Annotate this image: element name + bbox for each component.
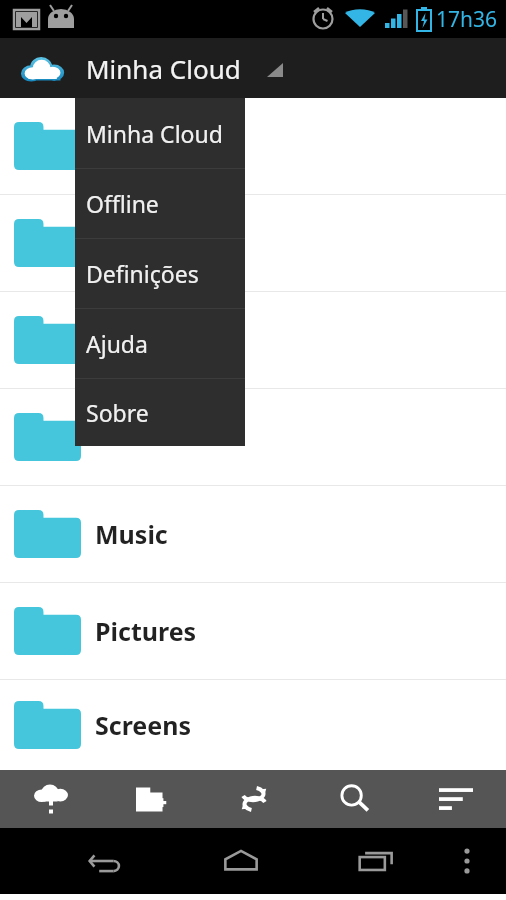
button[interactable]: Sort (405, 770, 506, 828)
staticText: Definições (86, 258, 199, 289)
button[interactable]: New folder (102, 770, 203, 828)
button[interactable]: Definições (75, 239, 245, 308)
button[interactable]: Music (0, 486, 506, 582)
button[interactable]: More options (447, 828, 487, 894)
staticText: Pictures (95, 614, 197, 648)
staticText: Screens (95, 708, 192, 742)
staticText: Sobre (86, 397, 149, 428)
button[interactable] (0, 292, 506, 388)
button[interactable]: Recents (346, 828, 406, 894)
staticText: 17h36 (436, 5, 498, 34)
button[interactable]: Pictures (0, 583, 506, 679)
button[interactable]: Ajuda (75, 309, 245, 378)
button[interactable]: Back (76, 828, 136, 894)
button[interactable]: Minha Cloud (75, 98, 245, 168)
button[interactable]: Offline (75, 169, 245, 238)
button[interactable]: Sobre (75, 379, 245, 446)
button[interactable]: Search (304, 770, 405, 828)
button[interactable]: Refresh (203, 770, 304, 828)
staticText: Music (95, 517, 168, 551)
button[interactable] (0, 389, 506, 485)
button[interactable]: Screens (0, 680, 506, 770)
staticText: Minha Cloud (86, 51, 241, 86)
staticText: Offline (86, 188, 159, 219)
staticText: Ajuda (86, 328, 148, 359)
button[interactable]: Upload (0, 770, 102, 828)
button[interactable] (0, 195, 506, 291)
button[interactable] (0, 98, 506, 194)
staticText: Minha Cloud (86, 118, 223, 149)
button[interactable]: Minha Cloud (0, 38, 506, 98)
button[interactable]: Home (211, 828, 271, 894)
